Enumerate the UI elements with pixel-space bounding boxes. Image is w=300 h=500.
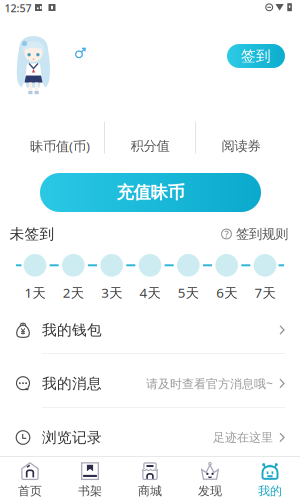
button[interactable]: 我的钱包 — [0, 306, 300, 354]
button[interactable]: 浏览记录 — [0, 413, 300, 462]
staticText: 我的钱包 — [42, 321, 102, 339]
staticText: 足迹在这里 — [213, 430, 273, 445]
button[interactable]: 书架 — [60, 460, 120, 500]
button[interactable]: 充值昧币 — [40, 173, 261, 212]
button[interactable]: 签到 — [227, 44, 285, 68]
staticText: 我的 — [258, 484, 282, 498]
button[interactable]: 阅读券 — [197, 129, 285, 163]
staticText: 我的消息 — [42, 374, 102, 392]
staticText: 请及时查看官方消息哦~ — [146, 375, 273, 391]
staticText: 签到 — [241, 47, 271, 65]
button[interactable]: 首页 — [0, 460, 60, 500]
button[interactable]: 积分值 — [106, 129, 194, 163]
staticText: 发现 — [198, 484, 222, 498]
staticText: ? — [224, 228, 228, 240]
button[interactable]: 昧币值(币) — [16, 129, 104, 163]
staticText: 首页 — [18, 484, 42, 498]
button[interactable]: ? — [221, 225, 288, 243]
staticText: 4天 — [139, 284, 160, 301]
button[interactable]: 我的消息 — [0, 356, 300, 410]
staticText: 2天 — [63, 284, 84, 301]
button[interactable]: 商城 — [120, 460, 180, 500]
staticText: 签到规则 — [236, 226, 288, 242]
staticText: 积分值 — [130, 138, 169, 154]
staticText: 昧币值(币) — [30, 137, 90, 155]
staticText: 浏览记录 — [42, 428, 102, 446]
staticText: 商城 — [138, 484, 162, 498]
staticText: 5天 — [178, 284, 199, 301]
staticText: 1天 — [24, 284, 45, 301]
staticText: 书架 — [78, 484, 102, 498]
staticText: 7天 — [254, 284, 275, 301]
button[interactable]: 我的 — [240, 460, 300, 500]
staticText: 3天 — [101, 284, 122, 301]
staticText: 未签到 — [9, 225, 54, 243]
staticText: 6天 — [216, 284, 237, 301]
staticText: 12:57 — [4, 1, 31, 15]
staticText: 阅读券 — [221, 138, 260, 154]
button[interactable]: 发现 — [180, 460, 240, 500]
staticText: 充值昧币 — [116, 182, 184, 203]
